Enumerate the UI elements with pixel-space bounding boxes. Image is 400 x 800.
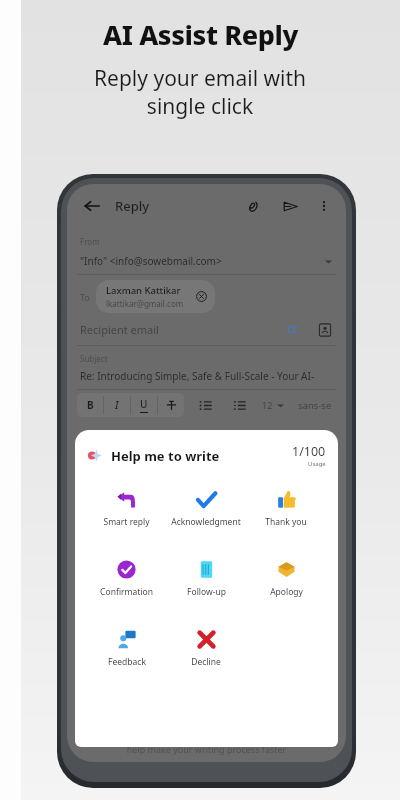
staticText: U <box>140 397 148 411</box>
button[interactable]: Send <box>278 194 302 218</box>
staticText: Follow-up <box>187 586 226 598</box>
button[interactable]: Strikethrough <box>158 393 184 417</box>
staticText: AI Assist Reply <box>103 16 298 53</box>
staticText: Apology <box>270 586 303 598</box>
button[interactable]: Feedback <box>87 628 166 670</box>
staticText: 1/100 <box>292 443 326 460</box>
staticText: To <box>80 291 90 303</box>
button[interactable]: Decline <box>166 628 246 670</box>
staticText: Smart reply <box>103 516 150 528</box>
staticText: Recipient email <box>80 322 159 337</box>
button[interactable]: U <box>131 393 157 417</box>
staticText: I <box>115 398 119 412</box>
staticText: Reply <box>115 197 150 215</box>
staticText: sans-se <box>298 399 332 412</box>
staticText: From <box>80 236 100 247</box>
button[interactable]: B <box>77 393 103 417</box>
staticText: Acknowledgment <box>171 516 241 528</box>
staticText: "Info" <info@sowebmail.com> <box>80 254 222 268</box>
button[interactable]: I <box>104 393 130 417</box>
staticText: Re: Introducing Simple, Safe & Full-Scal… <box>80 369 346 383</box>
staticText: Confirmation <box>100 586 153 598</box>
staticText: Thank you <box>265 516 307 528</box>
staticText: Feedback <box>108 656 146 668</box>
staticText: CC <box>287 323 299 336</box>
staticText: Laxman Kattikar <box>106 284 181 297</box>
staticText: Usage <box>308 460 326 468</box>
button[interactable]: Contacts <box>317 322 333 338</box>
button[interactable]: Apology <box>246 558 326 600</box>
button[interactable]: Thank you <box>246 488 326 530</box>
staticText: 12 <box>262 399 273 411</box>
button[interactable]: More options <box>314 196 334 216</box>
staticText: lkattikar@gmail.com <box>106 298 184 309</box>
button[interactable]: 12 <box>260 397 286 413</box>
staticText: Decline <box>191 656 221 668</box>
button[interactable]: Back <box>79 193 105 219</box>
button[interactable]: sans-se <box>296 397 338 414</box>
button[interactable]: CC <box>283 319 303 340</box>
button[interactable]: Follow-up <box>166 558 246 600</box>
staticText: Help me to write <box>111 447 220 465</box>
staticText: Reply your email with single click <box>94 64 306 120</box>
button[interactable]: Bulleted list <box>196 396 214 414</box>
staticText: help make your writing process faster <box>67 743 346 755</box>
button[interactable]: Smart reply <box>87 488 166 530</box>
staticText: B <box>87 398 94 412</box>
button[interactable]: Acknowledgment <box>166 488 246 530</box>
button[interactable]: Numbered list <box>230 396 248 414</box>
button[interactable]: Confirmation <box>87 558 166 600</box>
staticText: Subject <box>80 353 108 364</box>
button[interactable]: Attach <box>240 194 264 218</box>
button[interactable]: Laxman Kattikar <box>96 280 215 313</box>
